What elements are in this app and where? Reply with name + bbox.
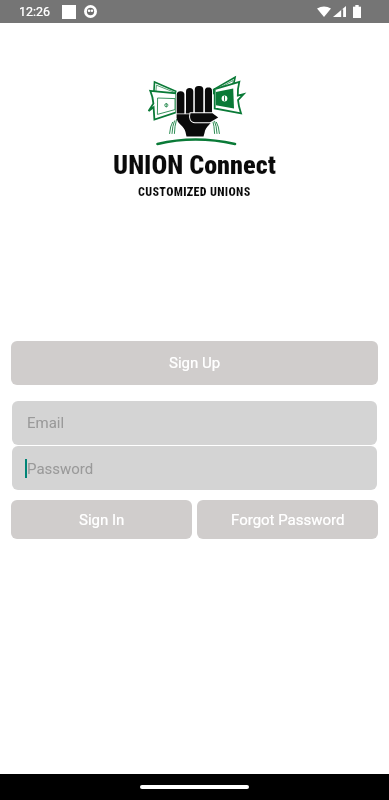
staticText: UNION Connect — [113, 150, 276, 181]
staticText: Sign Up — [169, 354, 221, 372]
staticText: 12:26 — [19, 4, 51, 19]
button[interactable]: Password field — [12, 446, 377, 490]
staticText: CUSTOMIZED UNIONS — [138, 185, 251, 199]
staticText: Forgot Password — [231, 511, 345, 529]
staticText: Sign In — [79, 511, 125, 529]
button[interactable]: Forgot Password — [197, 500, 378, 539]
staticText: Password — [27, 460, 94, 478]
button[interactable]: Home — [140, 785, 249, 789]
button[interactable]: Email field — [12, 401, 377, 445]
staticText: Email — [27, 414, 65, 432]
button[interactable]: Sign In — [11, 500, 192, 539]
button[interactable]: Sign Up — [11, 341, 378, 385]
other: UNION Connect logo — [144, 77, 245, 145]
